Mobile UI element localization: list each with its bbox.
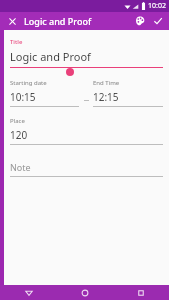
button[interactable]: End Time <box>93 79 163 107</box>
staticText: Logic and Proof <box>24 15 92 27</box>
staticText: 10:02 <box>148 1 166 11</box>
button[interactable]: Recent apps <box>113 285 169 300</box>
staticText: Note <box>10 161 31 173</box>
button[interactable]: Place <box>4 117 169 145</box>
staticText: 120 <box>10 128 28 142</box>
button[interactable]: Save <box>149 12 167 30</box>
button[interactable]: Title <box>4 38 169 68</box>
staticText: Title <box>10 38 23 46</box>
staticText: End Time <box>93 79 120 87</box>
staticText: Logic and Proof <box>10 49 91 64</box>
button[interactable]: Close <box>4 13 20 29</box>
button[interactable]: Home <box>57 285 113 300</box>
button[interactable]: Choose colour <box>131 12 149 30</box>
staticText: 12:15 <box>93 90 119 104</box>
staticText: Starting date <box>10 79 47 87</box>
button[interactable]: Note <box>4 161 169 177</box>
button[interactable]: Starting date <box>10 79 79 107</box>
button[interactable]: Back <box>0 285 57 300</box>
staticText: Place <box>10 117 25 125</box>
staticText: 10:15 <box>10 90 36 104</box>
